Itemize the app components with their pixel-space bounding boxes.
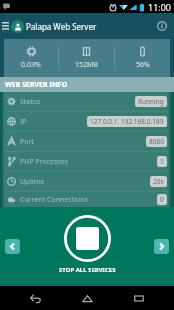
button[interactable]: Current Connections <box>0 192 174 207</box>
staticText: Palapa Web Server <box>26 21 97 32</box>
staticText: PHP Processes <box>20 157 69 167</box>
button[interactable]: IP <box>0 112 174 131</box>
button[interactable]: Next <box>154 239 169 254</box>
staticText: 0 <box>160 195 164 204</box>
staticText: Status <box>20 97 41 107</box>
button[interactable]: Recent apps <box>122 286 156 310</box>
button[interactable]: Status <box>0 92 174 111</box>
staticText: Running <box>138 97 164 106</box>
button[interactable]: Info <box>152 13 172 39</box>
staticText: IP <box>20 117 27 127</box>
button[interactable]: Back <box>18 286 52 310</box>
button[interactable]: 152MB <box>59 39 114 77</box>
button[interactable]: Port <box>0 132 174 151</box>
staticText: 1 <box>160 157 164 166</box>
staticText: 20s <box>153 177 164 186</box>
button[interactable]: Uptime <box>0 172 174 191</box>
button[interactable]: PHP Processes <box>0 152 174 171</box>
staticText: 11:00 <box>148 1 172 13</box>
staticText: 127.0.0.1, 192.168.0.189 <box>90 117 164 126</box>
button[interactable]: Open navigation drawer <box>1 16 10 36</box>
staticText: 8080 <box>149 137 164 146</box>
button[interactable]: 0.03% <box>4 39 58 77</box>
staticText: Current Connections <box>20 195 88 205</box>
staticText: 56% <box>136 60 150 70</box>
staticText: 0.03% <box>21 60 41 70</box>
button[interactable]: STOP ALL SERVICES <box>59 215 116 274</box>
staticText: Port <box>20 137 34 147</box>
staticText: Uptime <box>20 177 45 187</box>
button[interactable]: 56% <box>115 39 170 77</box>
button[interactable]: Previous <box>5 239 20 254</box>
staticText: WEB SERVER INFO <box>5 80 68 90</box>
staticText: STOP ALL SERVICES <box>59 266 116 274</box>
staticText: 152MB <box>75 60 98 70</box>
button[interactable]: Home <box>70 286 104 310</box>
